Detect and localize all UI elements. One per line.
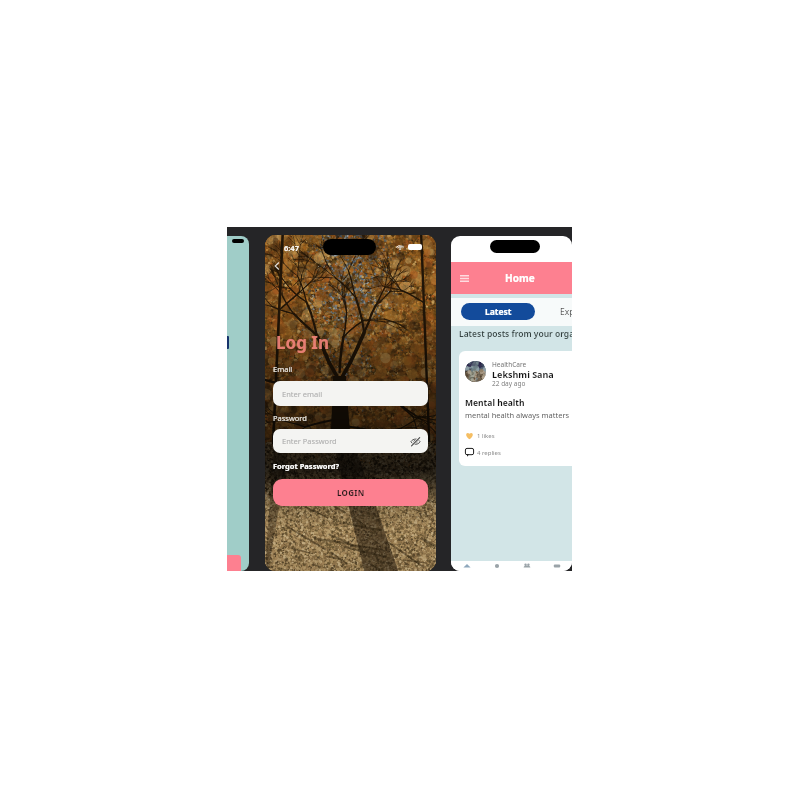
button[interactable]: Enter Password: [273, 429, 428, 453]
staticText: Enter Password: [282, 436, 337, 446]
staticText: HealthCare: [492, 360, 527, 369]
button[interactable]: Menu: [457, 271, 471, 285]
button[interactable]: Forgot Password?: [273, 459, 340, 473]
staticText: 6:47: [284, 243, 299, 253]
button[interactable]: Home: [451, 561, 482, 571]
button[interactable]: Back: [268, 257, 286, 275]
staticText: mental health always matters: [465, 410, 570, 420]
staticText: Lekshmi Sana: [492, 368, 554, 380]
button[interactable]: Enter email: [273, 381, 428, 406]
staticText: Home: [505, 271, 535, 285]
staticText: Forgot Password?: [273, 461, 340, 471]
staticText: Enter email: [282, 389, 323, 399]
staticText: Email: [273, 364, 293, 374]
staticText: Latest posts from your organisation: [459, 328, 572, 340]
staticText: Log In: [276, 331, 329, 354]
button[interactable]: HealthCare: [459, 351, 572, 466]
staticText: Latest: [485, 306, 512, 318]
button[interactable]: Profile: [542, 561, 572, 571]
staticText: Mental health: [465, 397, 525, 409]
staticText: 22 day ago: [492, 379, 526, 388]
button[interactable]: Community: [512, 561, 542, 571]
staticText: Password: [273, 413, 307, 423]
button[interactable]: Show password: [410, 436, 421, 447]
staticText: 4 replies: [477, 449, 501, 457]
button[interactable]: Search: [482, 561, 512, 571]
staticText: 1 likes: [477, 432, 495, 440]
staticText: LOGIN: [337, 487, 365, 498]
button[interactable]: Explore: [560, 303, 572, 320]
button[interactable]: Latest: [461, 303, 535, 320]
button[interactable]: LOGIN: [273, 479, 428, 506]
staticText: Explore: [560, 306, 572, 318]
